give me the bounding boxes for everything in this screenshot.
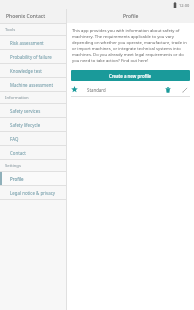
staticText: Risk assessment — [10, 40, 44, 46]
staticText: Machine assessment — [10, 82, 53, 88]
button[interactable]: Legal notice & privacy — [0, 186, 66, 199]
other: Default profile — [71, 86, 78, 93]
staticText: FAQ — [10, 136, 19, 142]
button[interactable]: Safety services — [0, 104, 66, 117]
button[interactable]: Machine assessment — [0, 78, 66, 91]
staticText: Safety services — [10, 108, 41, 114]
button[interactable]: Delete — [162, 84, 173, 95]
staticText: Knowledge test — [10, 68, 42, 74]
button[interactable]: Edit — [179, 84, 190, 95]
staticText: Standard — [87, 87, 106, 93]
button[interactable]: Risk assessment — [0, 36, 66, 49]
button[interactable]: Contact — [0, 146, 66, 159]
button[interactable]: FAQ — [0, 132, 66, 145]
button[interactable]: Safety lifecycle — [0, 118, 66, 131]
staticText: Settings — [5, 163, 21, 169]
staticText: Tools — [5, 27, 16, 33]
button[interactable]: Knowledge test — [0, 64, 66, 77]
button[interactable]: Probability of failure — [0, 50, 66, 63]
staticText: Contact — [10, 150, 26, 156]
button[interactable]: Default profile — [71, 83, 190, 96]
button[interactable]: Profile — [0, 172, 66, 185]
button[interactable]: Create a new profile — [71, 70, 190, 81]
staticText: Create a new profile — [109, 73, 152, 79]
staticText: Information — [5, 95, 29, 101]
staticText: 12:00 — [179, 3, 190, 8]
staticText: Profile — [10, 176, 24, 182]
staticText: Probability of failure — [10, 54, 52, 60]
staticText: This app provides you with information a… — [72, 28, 189, 64]
staticText: Safety lifecycle — [10, 122, 41, 128]
staticText: Legal notice & privacy — [10, 190, 56, 196]
staticText: Phoenix Contact — [6, 13, 46, 20]
staticText: Profile — [123, 13, 139, 20]
